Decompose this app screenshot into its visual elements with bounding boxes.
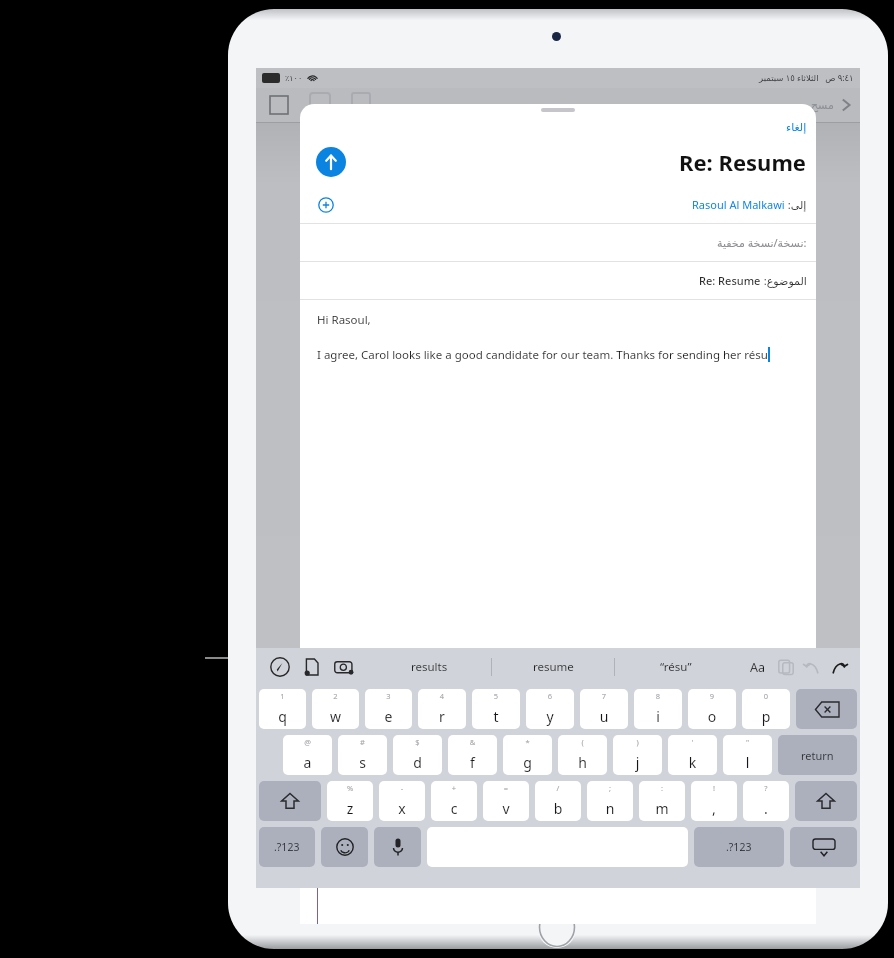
button[interactable]: .?123 xyxy=(694,827,784,867)
staticText: w xyxy=(312,707,359,726)
button[interactable]: ( xyxy=(558,735,607,775)
staticText: I've attached Carol's resume. She's the … xyxy=(325,858,763,873)
staticText: % xyxy=(327,783,373,793)
staticText: @ xyxy=(283,737,332,747)
button[interactable]: ) xyxy=(613,735,662,775)
staticText: y xyxy=(526,707,574,726)
staticText: g xyxy=(503,753,552,772)
staticText: r xyxy=(418,707,466,726)
button[interactable]: 0 xyxy=(742,689,790,729)
staticText: Re: Resume xyxy=(679,147,806,177)
button[interactable]: 6 xyxy=(526,689,574,729)
button[interactable]: return xyxy=(778,735,857,775)
staticText: / xyxy=(535,783,581,793)
button[interactable]: 8 xyxy=(634,689,682,729)
button[interactable]: .?123 xyxy=(259,827,315,867)
button[interactable]: Paste xyxy=(777,658,795,676)
staticText: “résu” xyxy=(660,659,692,675)
staticText: ' xyxy=(668,737,717,747)
staticText: Hi Rasoul, xyxy=(317,312,371,328)
staticText: x xyxy=(379,799,425,818)
button[interactable]: Markup xyxy=(270,657,290,677)
staticText: * xyxy=(503,737,552,747)
button[interactable]: resume xyxy=(492,648,614,686)
staticText: z xyxy=(327,799,373,818)
button[interactable]: ' xyxy=(668,735,717,775)
button[interactable] xyxy=(374,827,421,867)
button[interactable]: “résu” xyxy=(615,648,737,686)
button[interactable]: $ xyxy=(393,735,442,775)
button[interactable]: ; xyxy=(587,781,633,821)
staticText: p xyxy=(742,707,790,726)
button[interactable]: 1 xyxy=(259,689,306,729)
staticText: ٩:٤١ ص الثلاثاء ١٥ سبتمبر xyxy=(759,72,854,84)
staticText: Aa xyxy=(750,659,766,676)
staticText: m xyxy=(639,799,685,818)
button[interactable]: 3 xyxy=(365,689,412,729)
button[interactable]: Insert document xyxy=(302,657,322,677)
button[interactable]: Take photo xyxy=(333,656,355,678)
staticText: Rasoul Al Malkawi xyxy=(692,197,785,212)
staticText: :الموضوع xyxy=(761,273,807,288)
staticText: أرسلت من الـ iPad xyxy=(317,806,802,821)
button[interactable]: 7 xyxy=(580,689,628,729)
staticText: ) xyxy=(613,737,662,747)
button[interactable]: Undo xyxy=(803,658,821,676)
button[interactable]: * xyxy=(503,735,552,775)
button[interactable]: Add contact xyxy=(300,186,816,223)
button[interactable]: : xyxy=(639,781,685,821)
button[interactable] xyxy=(790,827,857,867)
staticText: h xyxy=(558,753,607,772)
button[interactable]: # xyxy=(338,735,387,775)
button[interactable]: ! xyxy=(691,781,737,821)
staticText: d xyxy=(393,753,442,772)
staticText: مسح xyxy=(811,99,834,112)
button[interactable]: Aa xyxy=(747,657,769,677)
staticText: , xyxy=(691,799,737,818)
staticText: return xyxy=(801,748,834,763)
button[interactable]: - xyxy=(379,781,425,821)
button[interactable]: + xyxy=(431,781,477,821)
staticText: 0 xyxy=(742,691,790,701)
staticText: ? xyxy=(743,783,789,793)
button[interactable]: 9 xyxy=(688,689,736,729)
staticText: - xyxy=(379,783,425,793)
staticText: j xyxy=(613,753,662,772)
button[interactable]: إلغاء xyxy=(300,116,816,138)
button[interactable]: 5 xyxy=(472,689,520,729)
button[interactable]: 4 xyxy=(418,689,466,729)
staticText: f xyxy=(448,753,497,772)
staticText: = xyxy=(483,783,529,793)
staticText: نسخة/نسخة مخفية: xyxy=(717,235,807,250)
button[interactable]: results xyxy=(368,648,491,686)
staticText: 4 xyxy=(418,691,466,701)
staticText: u xyxy=(580,707,628,726)
staticText: t xyxy=(472,707,520,726)
staticText: s xyxy=(338,753,387,772)
staticText: + xyxy=(431,783,477,793)
staticText: & xyxy=(448,737,497,747)
button[interactable]: 2 xyxy=(312,689,359,729)
button[interactable]: / xyxy=(535,781,581,821)
button[interactable]: نسخة/نسخة مخفية: xyxy=(300,224,816,261)
button[interactable] xyxy=(796,689,857,729)
button[interactable]: " xyxy=(723,735,772,775)
staticText: i xyxy=(634,707,682,726)
staticText: ! xyxy=(691,783,737,793)
button[interactable]: = xyxy=(483,781,529,821)
staticText: ٪١٠٠ xyxy=(285,74,303,83)
button[interactable] xyxy=(259,781,321,821)
staticText: ; xyxy=(587,783,633,793)
button[interactable]: ? xyxy=(743,781,789,821)
button[interactable]: @ xyxy=(283,735,332,775)
button[interactable]: Expand xyxy=(316,147,346,177)
button[interactable]: & xyxy=(448,735,497,775)
button[interactable]: Redo xyxy=(830,658,848,676)
staticText: .?123 xyxy=(726,840,752,854)
button[interactable]: Re: Resume xyxy=(300,262,816,299)
button[interactable] xyxy=(795,781,857,821)
staticText: # xyxy=(338,737,387,747)
button[interactable]: % xyxy=(327,781,373,821)
button[interactable] xyxy=(321,827,368,867)
